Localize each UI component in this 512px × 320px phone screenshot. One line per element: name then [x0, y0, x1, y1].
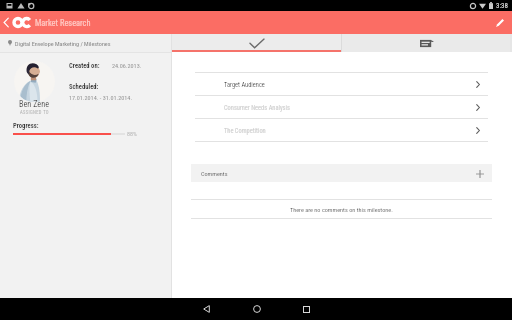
staticText: There are no comments on this milestone.	[290, 206, 393, 213]
button[interactable]: The Competition	[195, 119, 488, 142]
staticText: Progress:	[13, 122, 39, 130]
button[interactable]: Add comment	[472, 165, 488, 181]
staticText: ASSIGNED TO	[20, 110, 49, 115]
button[interactable]: Comments	[191, 164, 492, 182]
button[interactable]: Notes	[342, 34, 511, 52]
staticText: 88%	[127, 130, 137, 137]
button[interactable]: Home	[242, 298, 272, 320]
button[interactable]: Consumer Needs Analysis	[195, 96, 488, 119]
button[interactable]: Back	[0, 11, 12, 34]
staticText: Digital Envelope Marketing / Milestones	[15, 40, 111, 47]
staticText: Consumer Needs Analysis	[224, 104, 290, 112]
button[interactable]: Back	[191, 298, 221, 320]
staticText: The Competition	[224, 127, 266, 135]
button[interactable]: Checklist	[172, 34, 341, 52]
staticText: Ben Zene	[19, 99, 49, 109]
button[interactable]: Recent apps	[291, 298, 321, 320]
button[interactable]: Target Audience	[195, 73, 488, 96]
staticText: 17.01.2014. - 31.01.2014.	[69, 94, 133, 101]
staticText: Market Research	[35, 18, 91, 28]
staticText: Target Audience	[224, 81, 265, 89]
staticText: 24.06.2013.	[112, 62, 142, 69]
staticText: Scheduled:	[69, 83, 99, 91]
button[interactable]: Digital Envelope Marketing / Milestones	[0, 34, 171, 52]
button[interactable]: Edit	[488, 11, 512, 34]
staticText: Comments	[201, 170, 228, 177]
staticText: 3:38	[496, 2, 509, 10]
staticText: Created on:	[69, 62, 100, 70]
